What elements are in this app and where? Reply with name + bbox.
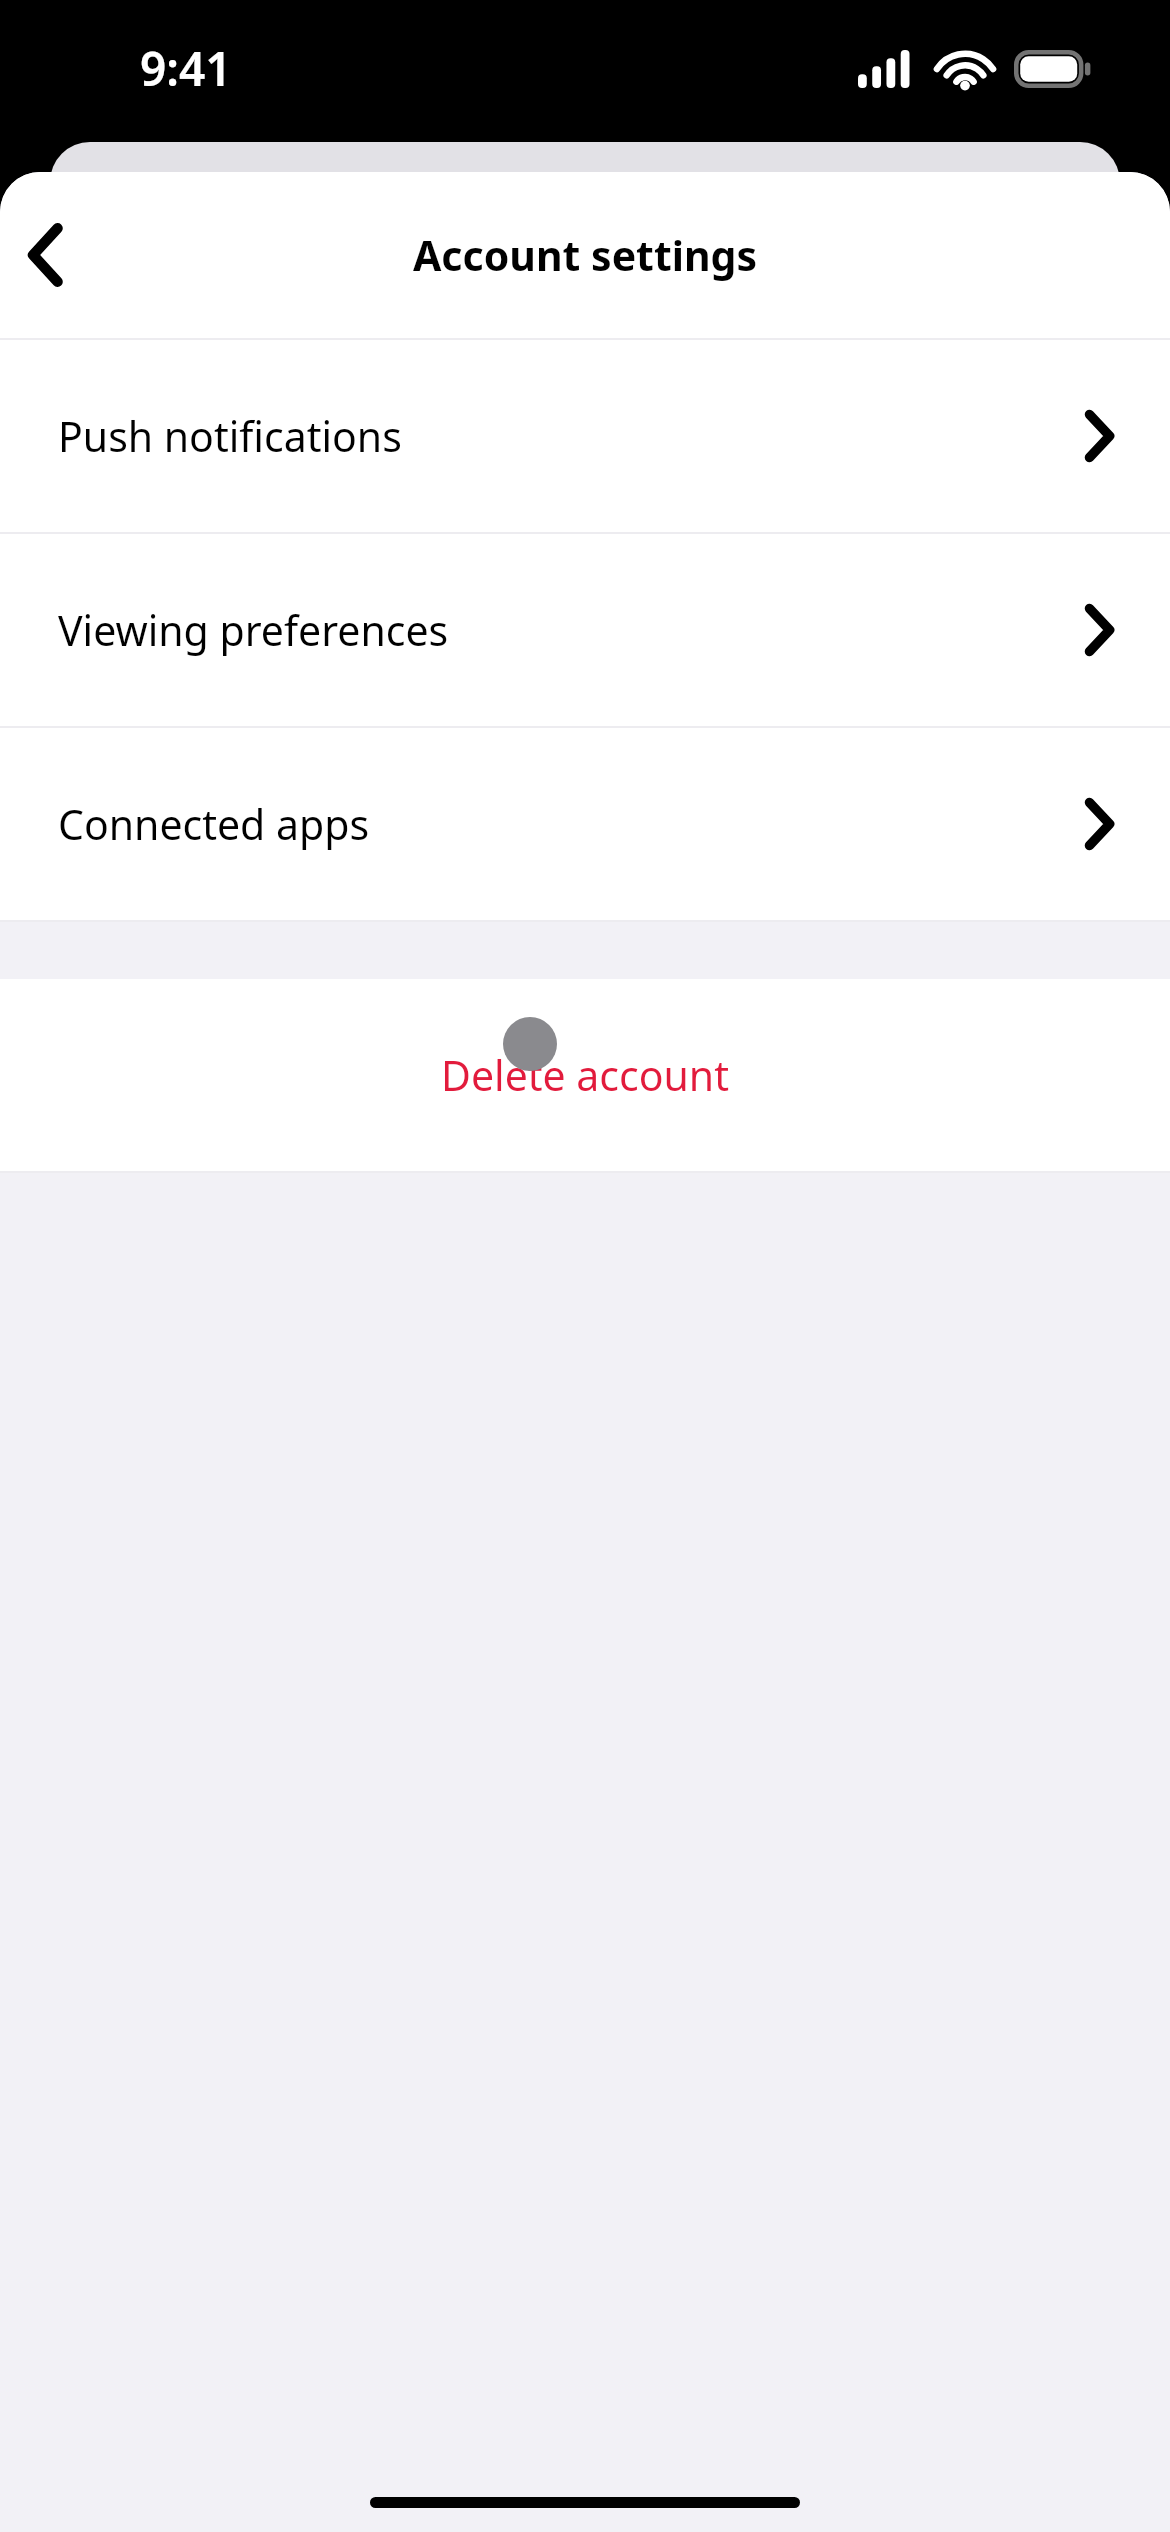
staticText: Push notifications — [58, 408, 402, 464]
button[interactable]: Viewing preferences — [0, 534, 1170, 726]
button[interactable]: Connected apps — [0, 728, 1170, 920]
staticText: Delete account — [441, 1047, 729, 1103]
button[interactable]: Delete account — [0, 979, 1170, 1171]
button[interactable]: Push notifications — [0, 340, 1170, 532]
staticText: 9:41 — [140, 37, 232, 100]
staticText: Account settings — [413, 227, 758, 283]
staticText: Connected apps — [58, 796, 370, 852]
button[interactable]: Back — [6, 210, 86, 300]
staticText: Viewing preferences — [58, 602, 449, 658]
